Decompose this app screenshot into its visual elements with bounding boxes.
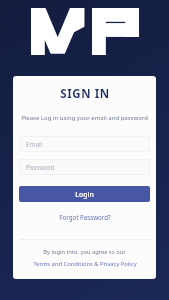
staticText: Email (26, 140, 43, 149)
button[interactable]: Email (19, 136, 150, 152)
staticText: Password (26, 163, 55, 172)
other: MP logo (31, 8, 139, 55)
staticText: SIGN IN (60, 86, 110, 102)
staticText: Forgot Password? (59, 213, 111, 221)
staticText: Terms and Conditions & Privacy Policy (33, 260, 137, 268)
button[interactable]: Login (19, 186, 150, 202)
staticText: Please Log in using your email and passw… (21, 114, 148, 122)
staticText: By login into, you agree to our (43, 248, 126, 256)
button[interactable]: Terms and Conditions & Privacy Policy (30, 259, 140, 269)
button[interactable]: Password (19, 159, 150, 175)
staticText: Login (75, 190, 94, 199)
button[interactable]: Forgot Password? (54, 211, 116, 223)
